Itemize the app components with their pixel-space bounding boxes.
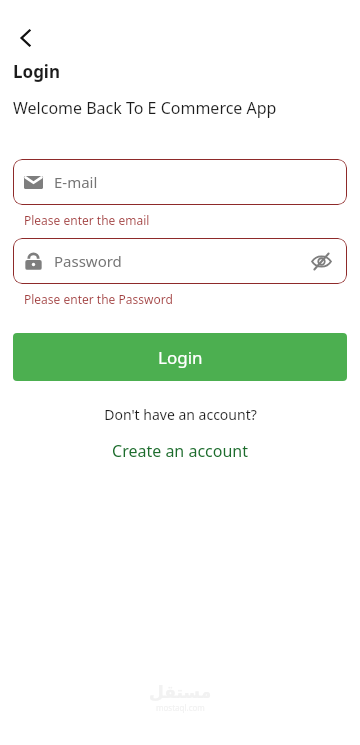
button[interactable]: E-mail [13,159,347,205]
staticText: Login [13,60,61,83]
button[interactable]: Password [13,238,347,284]
staticText: Password [54,251,122,271]
button[interactable]: Login [13,333,347,381]
staticText: mostaql.com [156,702,205,713]
staticText: Login [158,346,203,369]
staticText: مستقل [149,682,212,702]
staticText: Please enter the email [24,212,150,228]
button[interactable]: Back [6,18,46,58]
staticText: Please enter the Password [24,291,173,307]
button[interactable]: Create an account [104,438,256,464]
staticText: Don't have an account? [104,405,257,424]
staticText: Create an account [112,440,248,462]
staticText: E-mail [54,172,98,192]
button[interactable]: Show password [306,246,336,276]
staticText: Welcome Back To E Commerce App [13,97,277,119]
